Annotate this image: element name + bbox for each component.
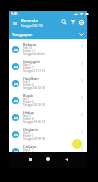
button[interactable]: Hasilkan xyxy=(9,73,87,90)
staticText: Mar 5 xyxy=(23,63,31,67)
staticText: Tanggal 09 09 09 xyxy=(23,137,46,141)
button[interactable]: Account xyxy=(77,17,86,29)
staticText: Beranda xyxy=(21,18,38,24)
staticText: Folder 4 xyxy=(23,83,34,87)
button[interactable]: More options xyxy=(78,93,85,107)
button[interactable]: More options xyxy=(78,127,85,141)
button[interactable]: Bahasa xyxy=(9,39,87,56)
staticText: Folder 4 xyxy=(23,117,34,121)
staticText: Tanggal 02 02 03 xyxy=(23,103,46,107)
staticText: Bujuk xyxy=(23,93,34,98)
staticText: Oct 9 xyxy=(23,131,30,135)
staticText: Origami xyxy=(23,127,38,132)
button[interactable]: Tanggapan xyxy=(9,29,87,39)
button[interactable]: Origami xyxy=(9,124,87,141)
staticText: Jan 1 xyxy=(23,97,30,101)
staticText: Tanggal 10 12 10 xyxy=(23,69,46,73)
staticText: Tanggal 28 / 50 xyxy=(21,24,44,28)
staticText: Bahasa xyxy=(23,42,37,47)
staticText: Feb 14 xyxy=(23,46,32,50)
button[interactable]: Gangguh xyxy=(9,56,87,73)
staticText: Tanggal 05 06 10 xyxy=(23,120,46,124)
button[interactable]: More options xyxy=(78,59,85,73)
button[interactable]: More options xyxy=(78,42,85,56)
staticText: Nov 3 xyxy=(23,114,31,118)
button[interactable]: More options xyxy=(78,144,85,158)
staticText: Folder 3 xyxy=(23,151,34,155)
staticText: Hasilkan xyxy=(23,76,39,81)
staticText: Gangguh xyxy=(23,59,40,64)
staticText: Sep 2 xyxy=(23,148,31,152)
staticText: Tanggapan xyxy=(12,32,33,37)
button[interactable]: Hidup xyxy=(9,107,87,124)
button[interactable]: Search xyxy=(59,17,68,29)
button[interactable]: More options xyxy=(78,76,85,90)
button[interactable]: Compose xyxy=(72,139,82,149)
button[interactable]: Back xyxy=(62,155,70,163)
staticText: Tanggal terkirim xyxy=(23,52,45,56)
staticText: Cahaya xyxy=(23,144,37,149)
button[interactable]: Menu xyxy=(9,17,21,29)
button[interactable]: Cahaya xyxy=(9,141,87,158)
staticText: Hidup xyxy=(23,110,34,115)
staticText: Tanggal 04 02 03 xyxy=(23,86,46,90)
button[interactable]: Filter xyxy=(68,17,77,29)
button[interactable]: Home xyxy=(44,155,52,163)
staticText: Folder 2 xyxy=(23,100,34,104)
staticText: Folder 7 xyxy=(23,66,34,70)
button[interactable]: More options xyxy=(78,110,85,124)
button[interactable]: Bujuk xyxy=(9,90,87,107)
button[interactable]: Recents xyxy=(26,155,34,163)
staticText: 9:30 xyxy=(11,12,18,16)
staticText: Folder 11 xyxy=(23,49,36,53)
staticText: Folder 1 xyxy=(23,134,34,138)
staticText: Feb 7 xyxy=(23,80,31,84)
